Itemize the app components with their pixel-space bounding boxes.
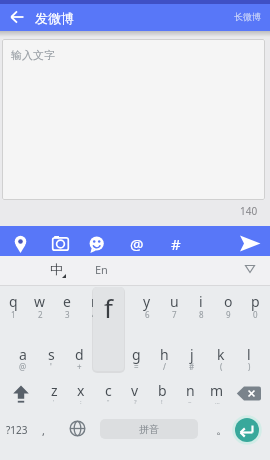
button[interactable]: h — [151, 343, 177, 365]
staticText: p — [251, 292, 260, 311]
button[interactable]: q — [0, 290, 26, 312]
staticText: 中 — [50, 261, 63, 277]
button[interactable]: r — [81, 290, 107, 312]
button[interactable]: 。 — [214, 420, 230, 438]
staticText: x — [77, 381, 85, 400]
staticText: c — [105, 381, 112, 400]
staticText: ! — [161, 398, 163, 406]
staticText: En — [95, 262, 108, 277]
staticText: v — [131, 381, 139, 400]
button[interactable] — [236, 386, 262, 401]
staticText: , — [42, 423, 45, 438]
staticText: b — [158, 381, 167, 400]
staticText: ( — [220, 361, 223, 371]
staticText: 3 — [65, 309, 70, 319]
staticText: ?123 — [6, 423, 28, 437]
button[interactable]: p — [242, 290, 268, 312]
button[interactable]: n — [177, 379, 203, 401]
button[interactable]: 拼音 — [100, 419, 198, 439]
button[interactable]: 输入文字 — [2, 39, 265, 200]
staticText: / — [163, 361, 166, 371]
staticText: @ — [19, 361, 27, 371]
button[interactable]: En — [86, 257, 116, 281]
staticText: d — [75, 345, 84, 364]
staticText: g — [132, 345, 141, 364]
button[interactable]: i — [188, 290, 214, 312]
staticText: a — [19, 345, 27, 364]
staticText: 1 — [11, 309, 16, 319]
staticText: 0 — [253, 309, 258, 319]
button[interactable]: y — [134, 290, 160, 312]
button[interactable]: b — [149, 379, 175, 401]
staticText: y — [143, 292, 151, 311]
button[interactable]: v — [122, 379, 148, 401]
staticText: # — [189, 361, 195, 371]
button[interactable]: ?123 — [3, 421, 31, 439]
staticText: j — [190, 345, 194, 364]
button[interactable]: l — [236, 343, 262, 365]
button[interactable] — [14, 235, 27, 254]
staticText: @ — [130, 234, 144, 254]
staticText: e — [63, 292, 71, 311]
staticText: : — [80, 398, 82, 406]
staticText: ' — [50, 361, 52, 371]
staticText: u — [170, 292, 179, 311]
staticText: … — [215, 398, 220, 406]
staticText: 拼音 — [139, 423, 159, 436]
staticText: 8 — [199, 309, 204, 319]
staticText: " — [107, 398, 110, 406]
staticText: 140 — [240, 204, 258, 218]
staticText: i — [199, 292, 203, 311]
button[interactable]: a — [10, 343, 36, 365]
staticText: 9 — [226, 309, 231, 319]
button[interactable] — [89, 236, 105, 254]
button[interactable]: 中 — [40, 257, 72, 281]
button[interactable]: 长微博 — [228, 6, 266, 26]
button[interactable]: g — [123, 343, 149, 365]
staticText: l — [247, 345, 251, 364]
button[interactable] — [245, 265, 255, 273]
button[interactable]: e — [54, 290, 80, 312]
button[interactable] — [12, 385, 30, 404]
staticText: h — [160, 345, 169, 364]
button[interactable]: c — [95, 379, 121, 401]
button[interactable]: s — [38, 343, 64, 365]
staticText: w — [34, 292, 46, 311]
staticText: ~ — [188, 398, 192, 406]
button[interactable]: u — [161, 290, 187, 312]
staticText: ? — [134, 398, 137, 406]
button[interactable]: z — [41, 379, 67, 401]
button[interactable]: j — [179, 343, 205, 365]
staticText: k — [217, 345, 225, 364]
button[interactable]: k — [208, 343, 234, 365]
staticText: 长微博 — [234, 11, 261, 22]
staticText: 。 — [216, 422, 228, 437]
staticText: m — [210, 381, 224, 400]
button[interactable] — [240, 235, 261, 252]
button[interactable]: d — [66, 343, 92, 365]
button[interactable] — [69, 420, 86, 437]
staticText: n — [186, 381, 195, 400]
button[interactable]: o — [215, 290, 241, 312]
staticText: = — [134, 361, 139, 371]
button[interactable] — [52, 236, 69, 251]
staticText: ) — [248, 361, 251, 371]
staticText: q — [9, 292, 18, 311]
staticText: f — [104, 290, 113, 325]
button[interactable] — [10, 10, 25, 24]
staticText: 6 — [145, 309, 150, 319]
button[interactable] — [231, 414, 263, 446]
staticText: r — [91, 292, 97, 311]
button[interactable]: m — [204, 379, 230, 401]
button[interactable]: , — [36, 421, 50, 439]
staticText: z — [51, 381, 58, 400]
staticText: 4 — [92, 309, 97, 319]
staticText: 发微博 — [35, 10, 74, 26]
button[interactable]: x — [68, 379, 94, 401]
button[interactable]: w — [27, 290, 53, 312]
button[interactable]: t — [107, 290, 133, 312]
